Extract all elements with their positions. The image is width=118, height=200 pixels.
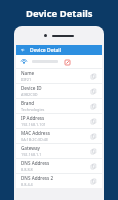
- staticText: 0A:1B:2C:3D:4E: [21, 137, 49, 142]
- button[interactable]: Edit: [64, 59, 70, 65]
- staticText: Device Details: [26, 7, 93, 20]
- staticText: IP Address: [21, 115, 45, 121]
- button[interactable]: Copy Brand: [90, 103, 97, 110]
- button[interactable]: Copy IP Address: [90, 118, 97, 125]
- button[interactable]: MAC Address: [16, 129, 102, 143]
- button[interactable]: Copy Name: [90, 73, 97, 80]
- staticText: DNS Address: [21, 160, 50, 166]
- button[interactable]: DNS Address 2: [16, 174, 102, 188]
- button[interactable]: Copy MAC Address: [90, 133, 97, 140]
- staticText: A9B2C0D: [21, 92, 38, 97]
- button[interactable]: Back: [16, 45, 102, 55]
- button[interactable]: Device ID: [16, 84, 102, 98]
- staticText: Device Detail: [30, 47, 62, 54]
- button[interactable]: Gateway: [16, 144, 102, 158]
- button[interactable]: Copy Device ID: [90, 88, 97, 95]
- staticText: 192.168.1.101: [21, 122, 46, 127]
- staticText: DNS Address 2: [21, 175, 54, 181]
- button[interactable]: Name: [16, 69, 102, 83]
- staticText: 192.168.1.1: [21, 152, 42, 157]
- staticText: Gateway: [21, 145, 41, 151]
- button[interactable]: Brand: [16, 99, 102, 113]
- staticText: 8.8.8.8: [21, 167, 33, 172]
- staticText: Device ID: [21, 85, 42, 91]
- staticText: Technologies: [21, 107, 45, 112]
- button[interactable]: IP Address: [16, 114, 102, 128]
- button[interactable]: Back: [20, 47, 26, 53]
- button[interactable]: Copy DNS Address: [90, 163, 97, 170]
- staticText: IIIF21: [21, 77, 32, 82]
- staticText: MAC Address: [21, 130, 50, 136]
- button[interactable]: Copy DNS Address 2: [90, 178, 97, 185]
- button[interactable]: Copy Gateway: [90, 148, 97, 155]
- button[interactable]: DNS Address: [16, 159, 102, 173]
- staticText: 8.8.4.4: [21, 182, 33, 187]
- staticText: Brand: [21, 100, 35, 106]
- staticText: Name: [21, 70, 35, 76]
- button[interactable]: Edit: [16, 55, 102, 68]
